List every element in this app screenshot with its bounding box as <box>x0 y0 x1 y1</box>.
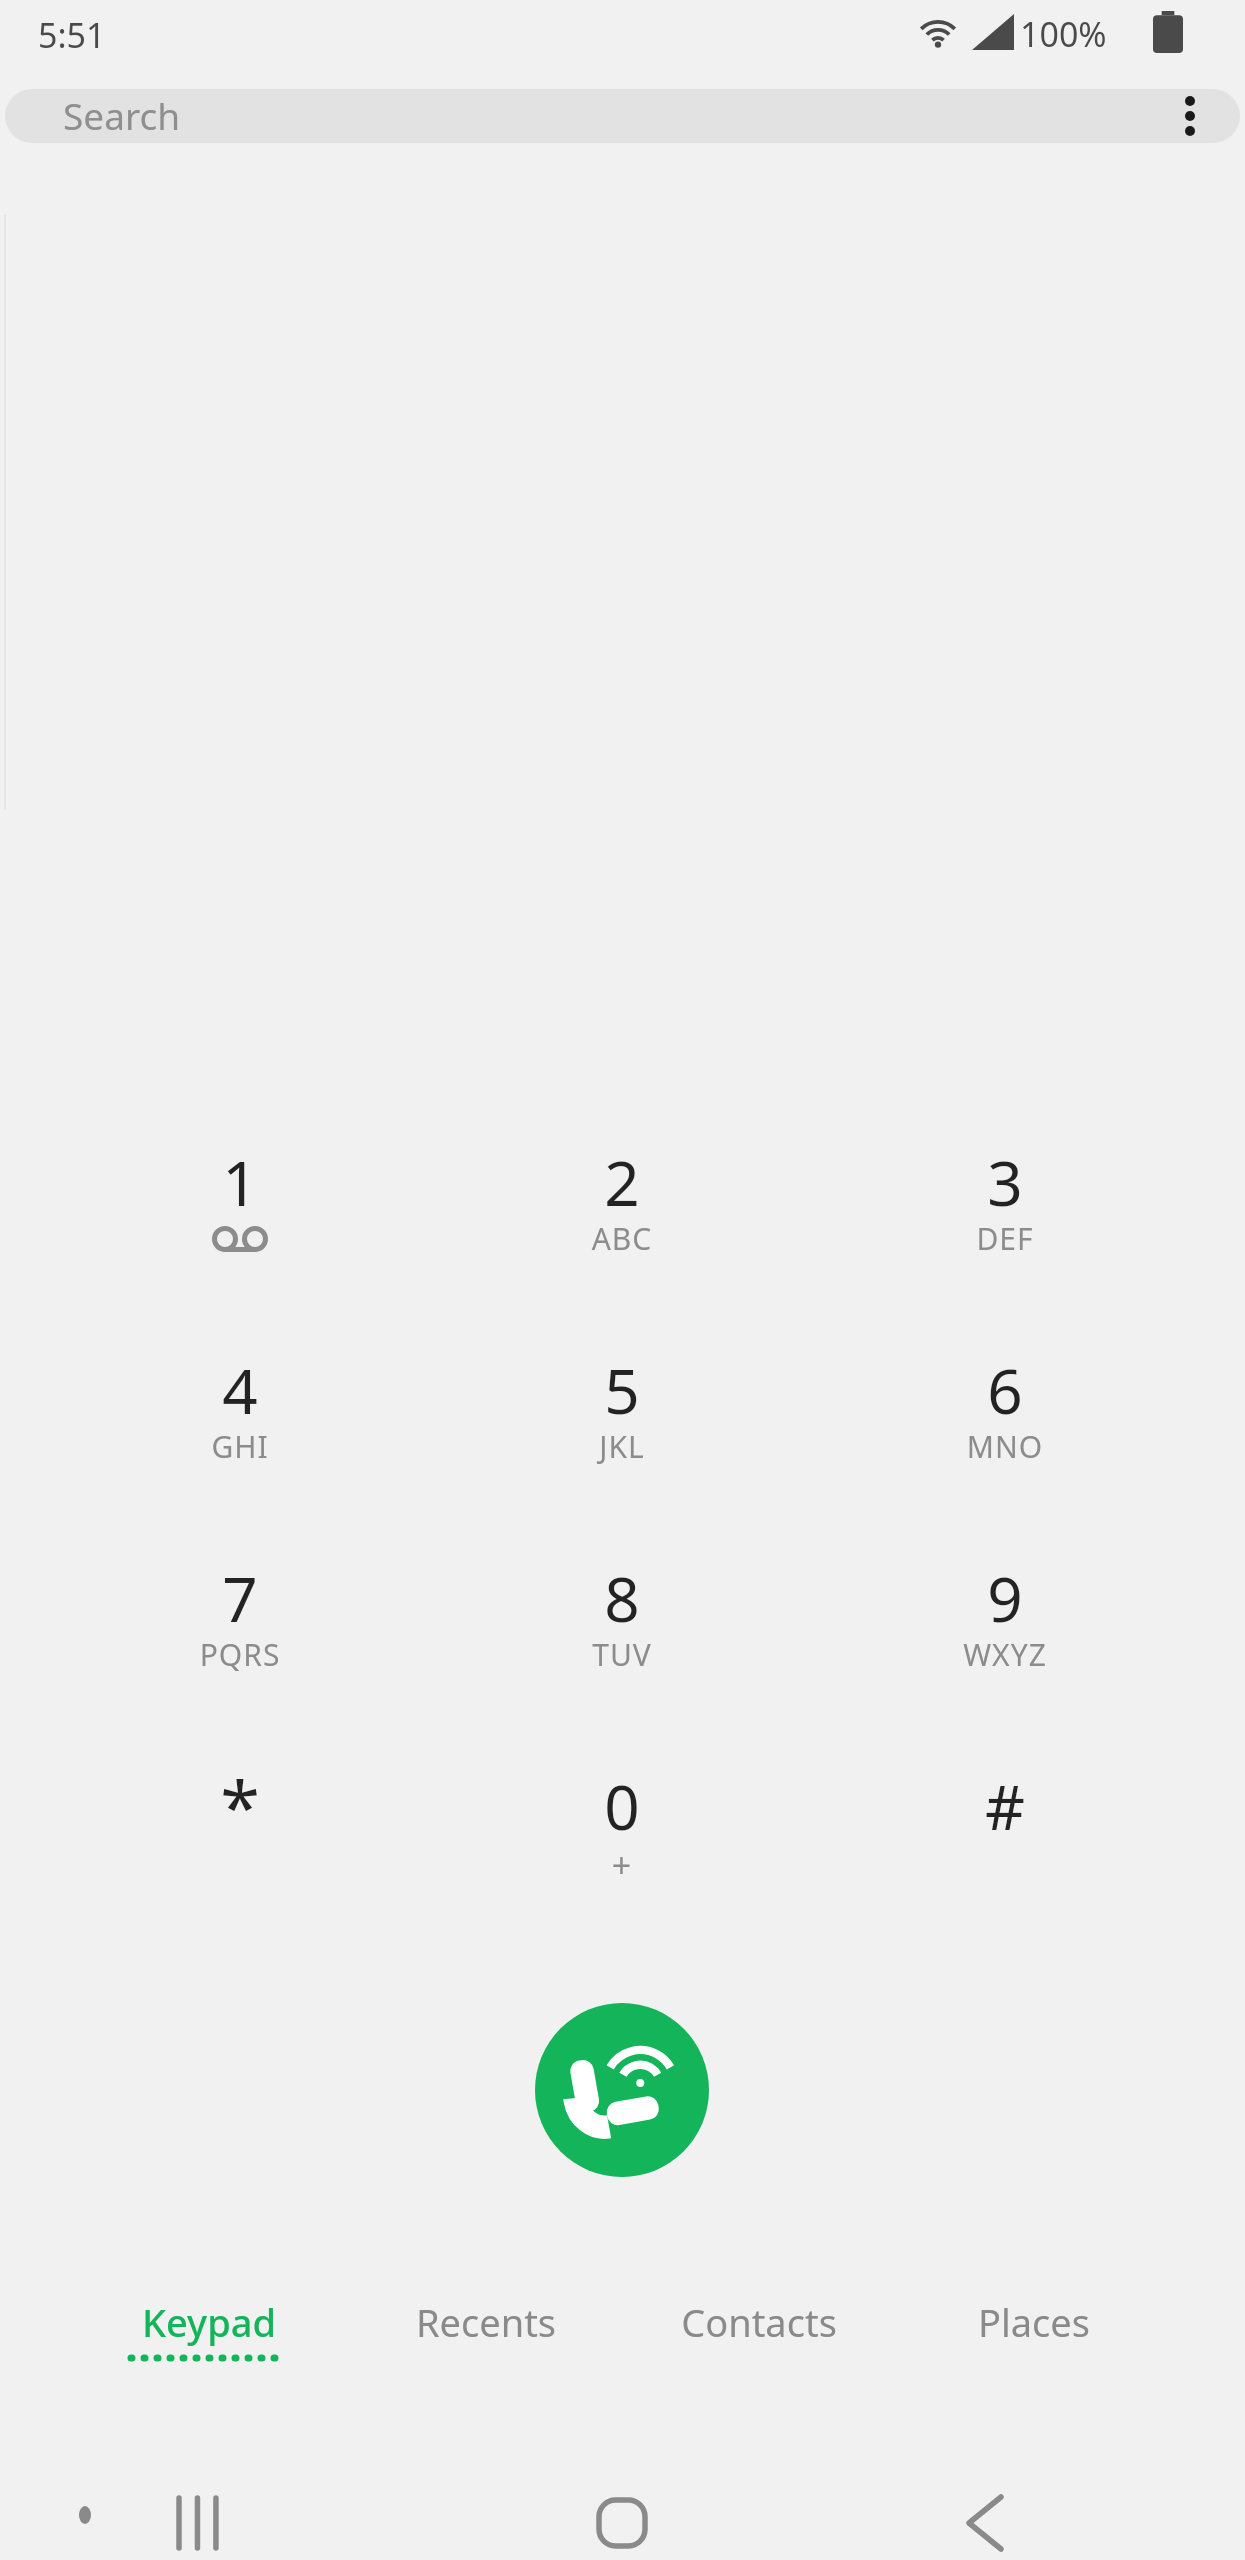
button[interactable]: Back <box>925 2470 1045 2560</box>
button[interactable]: 7 <box>75 1504 405 1704</box>
staticText: 5:51 <box>38 12 106 58</box>
staticText: # <box>840 1764 1170 1848</box>
staticText: MNO <box>840 1426 1170 1467</box>
button[interactable]: 8 <box>457 1504 787 1704</box>
staticText: Keypad <box>109 2296 309 2348</box>
staticText: GHI <box>75 1426 405 1467</box>
button[interactable]: Hide keyboard <box>55 2485 115 2545</box>
staticText: 0 <box>457 1764 787 1848</box>
staticText: DEF <box>840 1218 1170 1259</box>
button[interactable]: Contacts <box>634 2290 884 2400</box>
staticText: 9 <box>840 1556 1170 1640</box>
button[interactable]: 3 <box>840 1088 1170 1288</box>
staticText: 4 <box>75 1348 405 1432</box>
staticText: ABC <box>457 1218 787 1259</box>
staticText: 7 <box>75 1556 405 1640</box>
staticText: 5 <box>457 1348 787 1432</box>
staticText: TUV <box>457 1634 787 1675</box>
staticText: 2 <box>457 1140 787 1224</box>
staticText: WXYZ <box>840 1634 1170 1675</box>
button[interactable]: 2 <box>457 1088 787 1288</box>
button[interactable]: 1 <box>75 1088 405 1288</box>
button[interactable]: Recent apps <box>140 2470 260 2560</box>
staticText: 1 <box>75 1140 405 1224</box>
staticText: * <box>75 1756 405 1854</box>
staticText: + <box>457 1842 787 1888</box>
button[interactable]: 4 <box>75 1296 405 1496</box>
button[interactable]: 0 <box>457 1712 787 1912</box>
button[interactable]: # <box>840 1712 1170 1912</box>
staticText: Recents <box>376 2296 596 2348</box>
button[interactable]: * <box>75 1712 405 1912</box>
staticText: JKL <box>457 1426 787 1467</box>
staticText: 100% <box>1020 11 1107 57</box>
staticText: PQRS <box>75 1634 405 1675</box>
button[interactable]: 6 <box>840 1296 1170 1496</box>
button[interactable] <box>5 89 1240 143</box>
button[interactable]: 5 <box>457 1296 787 1496</box>
button[interactable]: More options <box>1160 89 1220 143</box>
button[interactable]: Home <box>562 2470 682 2560</box>
staticText: 6 <box>840 1348 1170 1432</box>
button[interactable]: Places <box>934 2290 1134 2400</box>
button[interactable]: Keypad <box>109 2290 309 2400</box>
staticText: Contacts <box>634 2296 884 2348</box>
button[interactable]: 9 <box>840 1504 1170 1704</box>
staticText: Places <box>934 2296 1134 2348</box>
button[interactable]: Call <box>535 2003 709 2177</box>
button[interactable]: Recents <box>376 2290 596 2400</box>
staticText: 3 <box>840 1140 1170 1224</box>
staticText: Search <box>63 90 181 140</box>
staticText: 8 <box>457 1556 787 1640</box>
